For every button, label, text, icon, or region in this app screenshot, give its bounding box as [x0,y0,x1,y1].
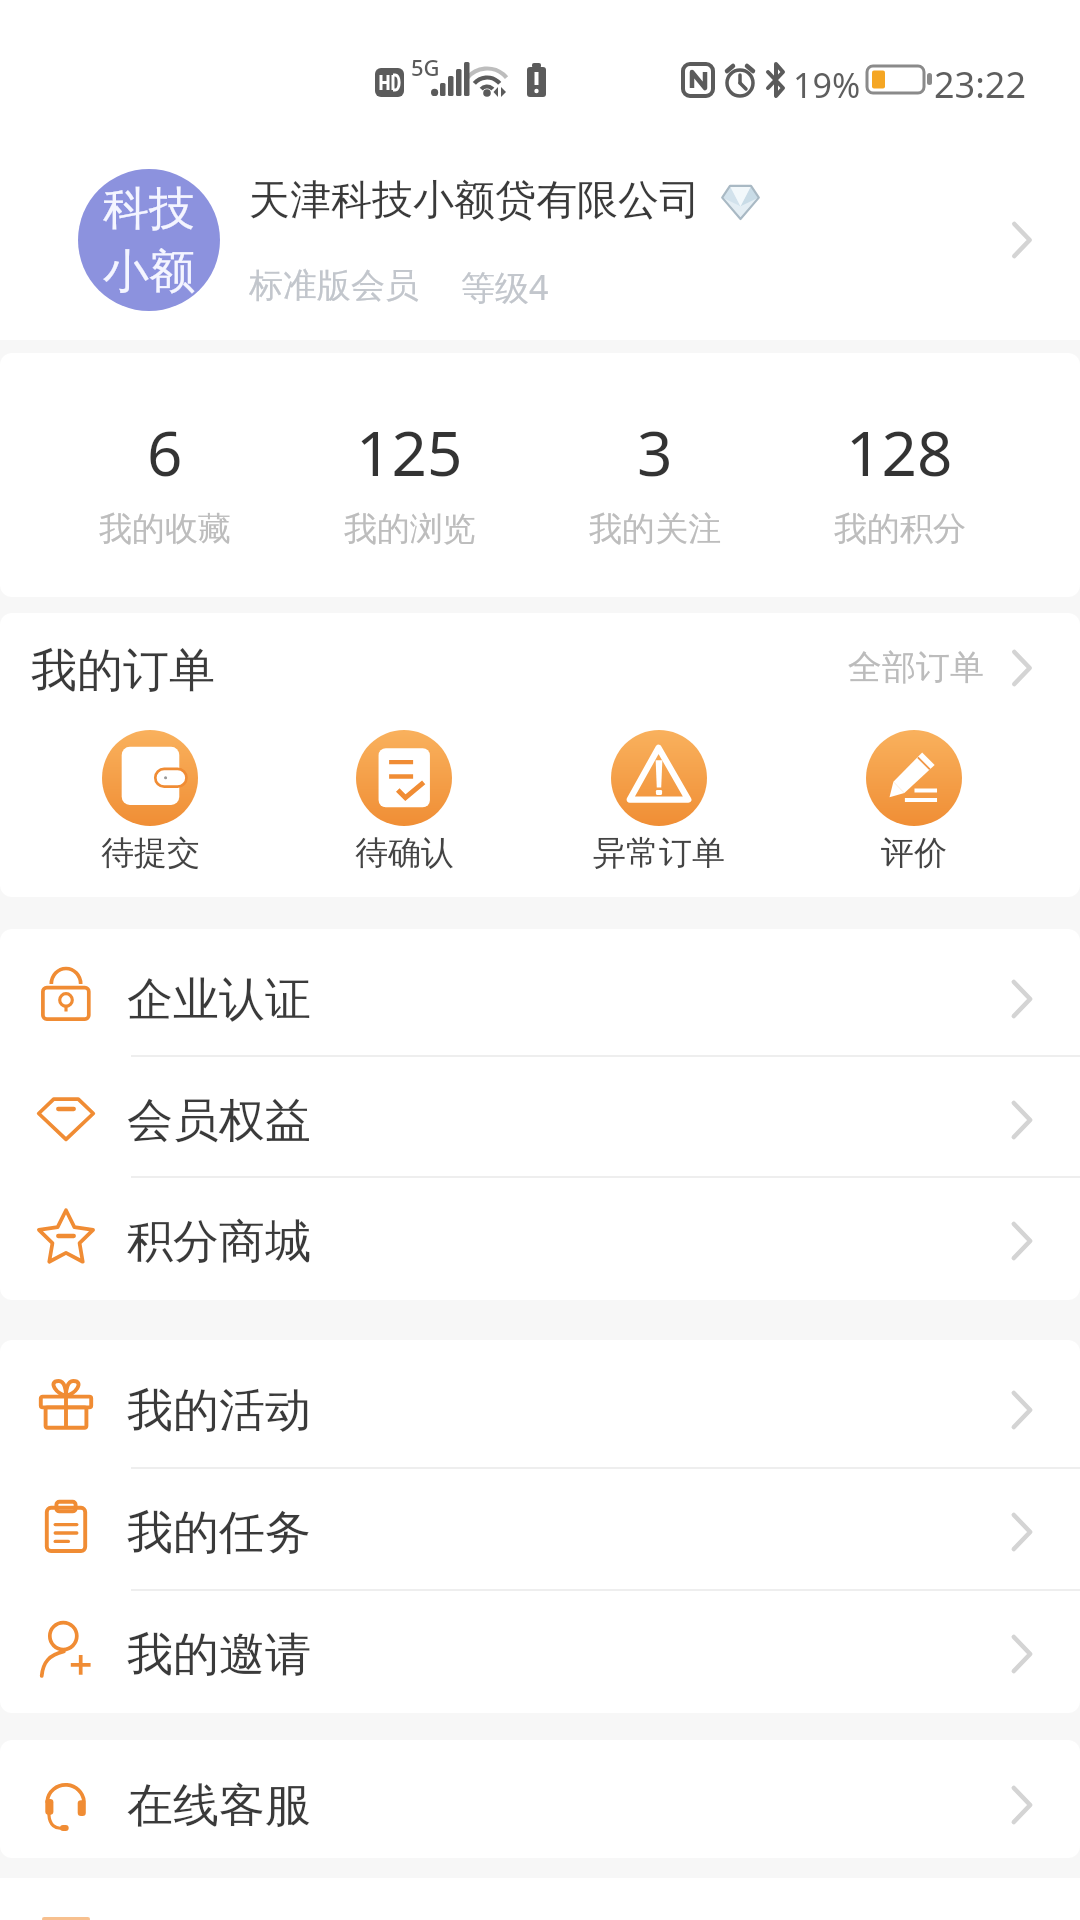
button[interactable]: 全部订单 [842,640,1048,695]
staticText: 128 [846,410,953,494]
staticText: 我的活动 [127,1382,311,1440]
button[interactable]: 待提交 [23,730,277,874]
staticText: 我的订单 [31,642,215,700]
button[interactable]: 3 [532,353,777,597]
staticText: 6 [147,410,183,494]
staticText: 我的任务 [127,1504,311,1562]
button[interactable]: 异常订单 [531,730,786,874]
button[interactable]: 会员权益 [0,1057,1080,1178]
staticText: 待确认 [355,832,454,874]
button[interactable]: 企业认证 [0,936,1080,1057]
staticText: 待提交 [101,832,200,874]
staticText: 我的积分 [834,508,966,550]
staticText: 23:22 [934,60,1027,109]
button[interactable]: 6 [43,353,287,597]
staticText: 我的收藏 [99,508,231,550]
staticText: 125 [356,410,463,494]
staticText: 科技 [103,180,195,238]
button[interactable]: 我的邀请 [0,1591,1080,1713]
staticText: 3 [637,410,673,494]
staticText: 5G [411,52,440,82]
button[interactable]: 待确认 [277,730,531,874]
button[interactable]: 积分商城 [0,1178,1080,1299]
staticText: 异常订单 [593,832,725,874]
staticText: 标准版会员 [249,264,419,307]
staticText: 评价 [881,832,947,874]
button[interactable]: 128 [777,353,1022,597]
staticText: 在线客服 [127,1777,311,1835]
button[interactable]: 评价 [786,730,1041,874]
button[interactable]: 我的任务 [0,1469,1080,1591]
staticText: 企业认证 [127,971,311,1029]
button[interactable]: 125 [287,353,532,597]
staticText: 小额 [103,243,195,301]
staticText: 19% [793,62,861,108]
staticText: 天津科技小额贷有限公司 [249,175,700,227]
staticText: 积分商城 [127,1213,311,1271]
button[interactable]: 在线客服 [0,1747,1080,1858]
staticText: 我的关注 [589,508,721,550]
staticText: 等级4 [461,264,549,310]
staticText: 会员权益 [127,1092,311,1150]
button[interactable]: Profile, 天津科技小额贷有限公司 [0,120,1080,340]
staticText: 全部订单 [848,646,984,689]
button[interactable]: 我的活动 [0,1347,1080,1469]
staticText: 我的邀请 [127,1626,311,1684]
staticText: 我的浏览 [344,508,476,550]
